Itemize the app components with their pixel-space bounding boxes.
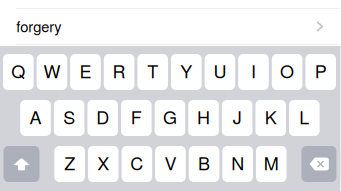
staticText: B [198,150,210,175]
button[interactable]: T [137,54,168,90]
button[interactable]: S [54,100,84,136]
button[interactable]: P [305,54,336,90]
staticText: V [164,150,176,175]
button[interactable]: I [238,54,269,90]
button[interactable]: Q [3,54,34,90]
button[interactable]: M [256,146,286,182]
button[interactable]: X [88,146,118,182]
button[interactable]: N [222,146,253,182]
button[interactable]: L [289,100,320,136]
staticText: C [130,150,143,175]
staticText: I [251,58,256,83]
staticText: K [265,104,277,129]
button[interactable]: R [104,54,134,90]
staticText: L [299,104,309,129]
button[interactable]: Shift [3,146,39,182]
button[interactable]: U [205,54,235,90]
button[interactable]: D [87,100,118,136]
staticText: W [43,58,60,83]
staticText: H [197,104,210,129]
staticText: G [163,104,177,129]
staticText: P [315,58,327,83]
staticText: N [231,150,244,175]
button[interactable]: O [272,54,302,90]
button[interactable]: A [20,100,51,136]
staticText: U [213,58,226,83]
staticText: O [280,58,294,83]
staticText: R [113,58,126,83]
button[interactable]: Z [54,146,85,182]
button[interactable]: Delete [301,146,336,182]
staticText: S [63,104,75,129]
button[interactable]: forgery [0,0,340,36]
button[interactable]: E [70,54,101,90]
staticText: X [97,150,109,175]
button[interactable]: H [188,100,219,136]
button[interactable]: C [121,146,152,182]
staticText: Q [11,58,25,83]
staticText: A [30,104,42,129]
staticText: Y [180,58,192,83]
button[interactable]: B [189,146,219,182]
staticText: D [96,104,109,129]
button[interactable]: K [255,100,286,136]
button[interactable]: J [222,100,252,136]
button[interactable]: V [155,146,186,182]
button[interactable]: W [37,54,67,90]
button[interactable]: Y [171,54,202,90]
staticText: T [147,58,158,83]
staticText: Z [64,150,75,175]
staticText: E [79,58,91,83]
staticText: M [264,150,279,175]
staticText: forgery [16,15,61,36]
staticText: J [233,104,242,129]
button[interactable]: G [155,100,185,136]
button[interactable]: F [121,100,152,136]
staticText: F [131,104,142,129]
